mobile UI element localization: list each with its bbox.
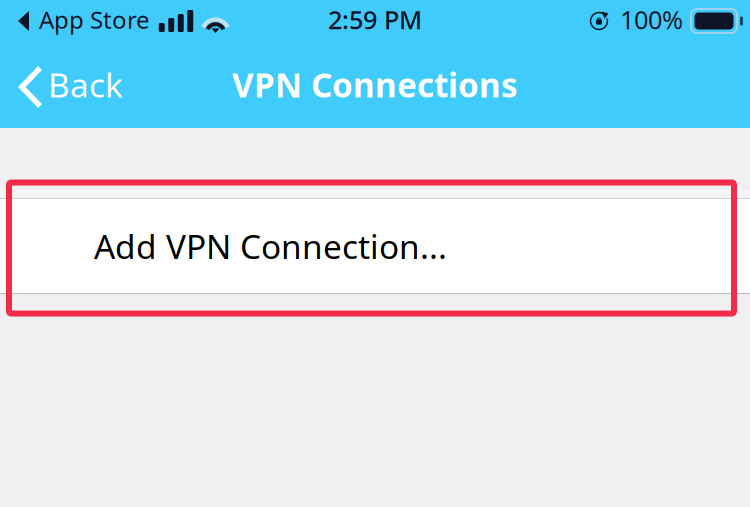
button[interactable]: Back <box>0 46 139 128</box>
staticText: 2:59 PM <box>328 3 422 36</box>
staticText: VPN Connections <box>232 62 518 107</box>
staticText: App Store <box>39 4 150 35</box>
staticText: Back <box>48 62 123 107</box>
staticText: 100% <box>620 3 683 36</box>
staticText: Add VPN Connection... <box>94 224 447 268</box>
button[interactable]: Add VPN Connection... <box>0 199 750 293</box>
